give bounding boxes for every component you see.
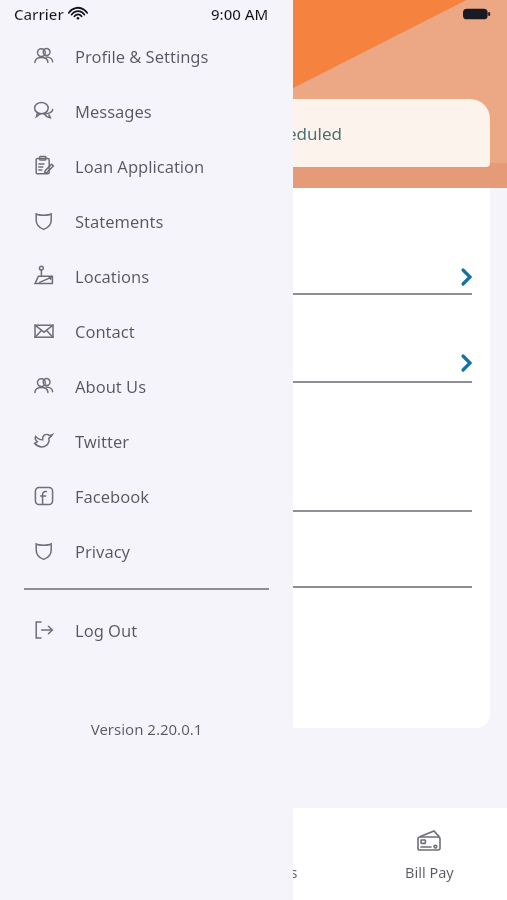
button[interactable]: Scheduled <box>110 99 490 167</box>
button[interactable]: Messages <box>220 822 308 886</box>
staticText: Facebook <box>75 485 149 507</box>
staticText: Loan Application <box>75 155 205 177</box>
staticText: Contact <box>75 320 135 342</box>
button[interactable]: Profile & Settings <box>0 28 293 83</box>
button[interactable]: Loan Application <box>0 138 293 193</box>
button[interactable]: Privacy <box>0 523 293 578</box>
staticText: Log Out <box>75 619 138 641</box>
staticText: Twitter <box>75 430 130 452</box>
staticText: Carrier <box>14 4 64 24</box>
button[interactable]: Contact <box>0 303 293 358</box>
staticText: Version 2.20.0.1 <box>0 719 293 739</box>
staticText: Messages <box>230 862 298 882</box>
button[interactable]: Open item <box>455 265 479 289</box>
staticText: 9:00 AM <box>211 4 269 24</box>
button[interactable]: Bill Pay <box>395 822 464 886</box>
staticText: Profile & Settings <box>75 45 209 67</box>
button[interactable]: Open item <box>455 351 479 375</box>
button[interactable]: Messages <box>0 83 293 138</box>
staticText: Bill Pay <box>405 862 454 882</box>
staticText: Statements <box>75 210 164 232</box>
button[interactable]: Locations <box>0 248 293 303</box>
button[interactable]: Statements <box>0 193 293 248</box>
staticText: About Us <box>75 375 147 397</box>
staticText: Locations <box>75 265 150 287</box>
staticText: Privacy <box>75 540 131 562</box>
staticText: Scheduled <box>259 122 342 145</box>
button[interactable]: Twitter <box>0 413 293 468</box>
button[interactable]: About Us <box>0 358 293 413</box>
button[interactable]: Log Out <box>0 602 293 657</box>
staticText: Messages <box>75 100 152 122</box>
button[interactable]: Facebook <box>0 468 293 523</box>
